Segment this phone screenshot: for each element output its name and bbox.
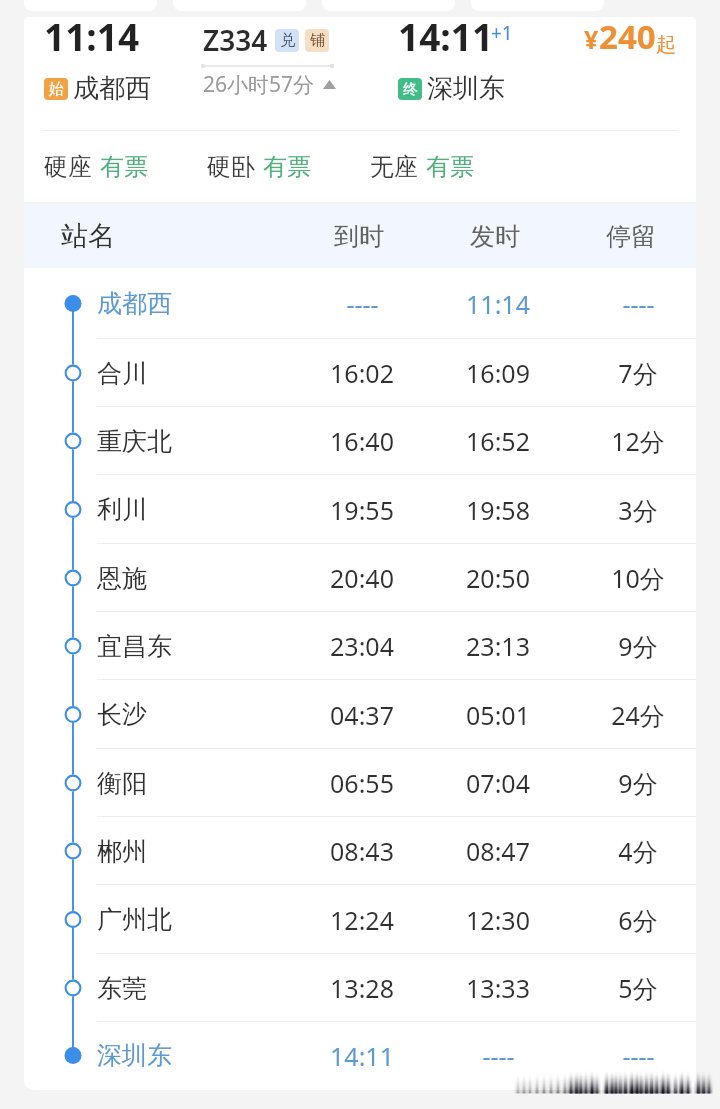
staticText: 到时 [334, 221, 384, 252]
staticText: 16:09 [466, 356, 530, 390]
staticText: 东莞 [97, 973, 147, 1004]
staticText: 停留 [606, 221, 656, 252]
staticText: 宜昌东 [97, 631, 172, 662]
staticText: Z334 [203, 21, 268, 59]
staticText: 6分 [618, 903, 658, 937]
staticText: 16:40 [330, 424, 394, 458]
staticText: 07:04 [466, 766, 530, 800]
staticText: 发时 [470, 221, 520, 252]
staticText: 7分 [618, 356, 658, 390]
staticText: 19:55 [330, 493, 394, 527]
staticText: 05:01 [466, 698, 530, 732]
staticText: 12分 [611, 424, 665, 458]
staticText: 硬卧 [207, 152, 255, 182]
staticText: 站名 [61, 219, 115, 253]
staticText: 240 [599, 17, 656, 59]
staticText: ---- [482, 1039, 515, 1073]
staticText: 起 [656, 32, 676, 57]
staticText: 深圳东 [427, 72, 505, 105]
button[interactable]: 成都西 [24, 268, 696, 339]
staticText: 19:58 [466, 493, 530, 527]
staticText: ---- [346, 287, 379, 321]
button[interactable]: 宜昌东 [24, 612, 696, 680]
staticText: 5分 [618, 971, 658, 1005]
staticText: 深圳东 [97, 1040, 172, 1071]
staticText: 24分 [611, 698, 665, 732]
staticText: 成都西 [97, 288, 172, 319]
button[interactable]: 郴州 [24, 817, 696, 885]
staticText: 重庆北 [97, 426, 172, 457]
staticText: 12:24 [330, 903, 394, 937]
staticText: 长沙 [97, 699, 147, 730]
staticText: ¥ [584, 22, 599, 56]
button[interactable]: 衡阳 [24, 749, 696, 817]
staticText: 10分 [611, 561, 665, 595]
staticText: 08:43 [330, 834, 394, 868]
staticText: 20:40 [330, 561, 394, 595]
staticText: 23:04 [330, 629, 394, 663]
staticText: 16:52 [466, 424, 530, 458]
staticText: 铺 [310, 31, 325, 50]
staticText: 3分 [618, 493, 658, 527]
staticText: 始 [49, 80, 64, 99]
staticText: 恩施 [97, 563, 147, 594]
button[interactable]: 广州北 [24, 885, 696, 954]
staticText: 13:33 [466, 971, 530, 1005]
button[interactable]: 长沙 [24, 680, 696, 749]
button[interactable]: 恩施 [24, 544, 696, 612]
staticText: 无座 [370, 152, 418, 182]
button[interactable]: 利川 [24, 475, 696, 544]
staticText: 硬座 [44, 152, 92, 182]
staticText: 23:13 [466, 629, 530, 663]
staticText: 利川 [97, 494, 147, 525]
staticText: 广州北 [97, 904, 172, 935]
staticText: 有票 [263, 152, 311, 182]
staticText: 26小时57分 [203, 70, 315, 99]
staticText: 9分 [618, 629, 658, 663]
staticText: 郴州 [97, 836, 147, 867]
staticText: 终 [403, 80, 418, 99]
staticText: 08:47 [466, 834, 530, 868]
staticText: 06:55 [330, 766, 394, 800]
staticText: 12:30 [466, 903, 530, 937]
staticText: 11:14 [44, 17, 140, 61]
staticText: 13:28 [330, 971, 394, 1005]
staticText: 04:37 [330, 698, 394, 732]
button[interactable]: 合川 [24, 339, 696, 407]
button[interactable]: 深圳东 [24, 1022, 696, 1089]
staticText: ---- [622, 1039, 655, 1073]
staticText: ---- [622, 287, 655, 321]
staticText: 衡阳 [97, 768, 147, 799]
button[interactable]: 11:14 [24, 17, 696, 202]
staticText: 4分 [618, 834, 658, 868]
staticText: 合川 [97, 358, 147, 389]
staticText: +1 [491, 20, 513, 46]
staticText: 16:02 [330, 356, 394, 390]
staticText: 有票 [100, 152, 148, 182]
staticText: 11:14 [466, 287, 530, 321]
button[interactable]: 重庆北 [24, 407, 696, 475]
staticText: 14:11 [330, 1039, 394, 1073]
staticText: 14:11 [398, 17, 494, 61]
staticText: 成都西 [73, 72, 151, 105]
staticText: 20:50 [466, 561, 530, 595]
staticText: 有票 [426, 152, 474, 182]
staticText: 兑 [280, 31, 295, 50]
staticText: 9分 [618, 766, 658, 800]
button[interactable]: 东莞 [24, 954, 696, 1022]
